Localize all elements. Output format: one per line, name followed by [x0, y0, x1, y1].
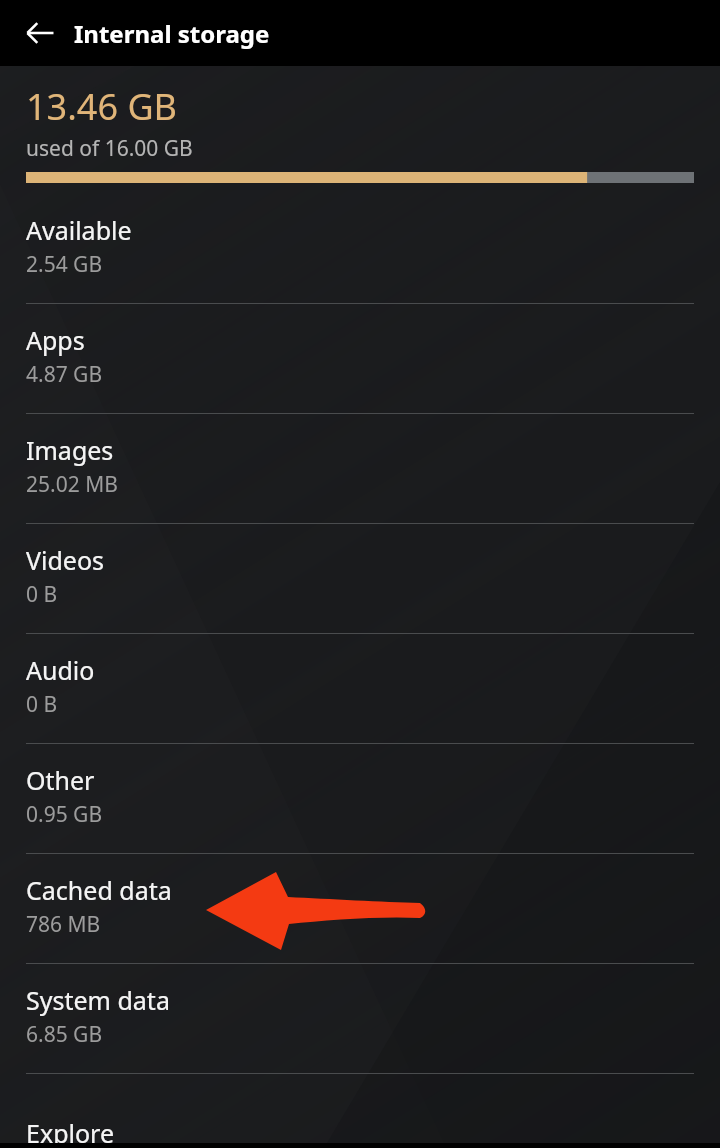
staticText: Audio [26, 653, 95, 687]
staticText: System data [26, 983, 170, 1017]
staticText: 0.95 GB [26, 800, 103, 829]
staticText: 0 B [26, 690, 58, 719]
staticText: Apps [26, 323, 85, 357]
button[interactable]: Videos [0, 524, 720, 634]
staticText: Images [26, 433, 114, 467]
staticText: Other [26, 763, 95, 797]
staticText: 0 B [26, 580, 58, 609]
staticText: 786 MB [26, 910, 101, 939]
staticText: Videos [26, 543, 105, 577]
button[interactable]: Cached data [0, 854, 720, 964]
staticText: Internal storage [74, 17, 270, 50]
staticText: 4.87 GB [26, 360, 103, 389]
button[interactable]: Back [14, 7, 66, 59]
button[interactable]: Available [0, 194, 720, 304]
staticText: 25.02 MB [26, 470, 118, 499]
staticText: Explore [26, 1116, 115, 1148]
staticText: 2.54 GB [26, 250, 103, 279]
button[interactable]: Images [0, 414, 720, 524]
button[interactable]: Apps [0, 304, 720, 414]
button[interactable]: System data [0, 964, 720, 1074]
button[interactable]: Audio [0, 634, 720, 744]
staticText: Available [26, 213, 132, 247]
staticText: Cached data [26, 873, 172, 907]
staticText: 13.46 GB [26, 82, 177, 131]
button[interactable]: Other [0, 744, 720, 854]
staticText: used of 16.00 GB [26, 134, 193, 163]
staticText: 6.85 GB [26, 1020, 103, 1049]
